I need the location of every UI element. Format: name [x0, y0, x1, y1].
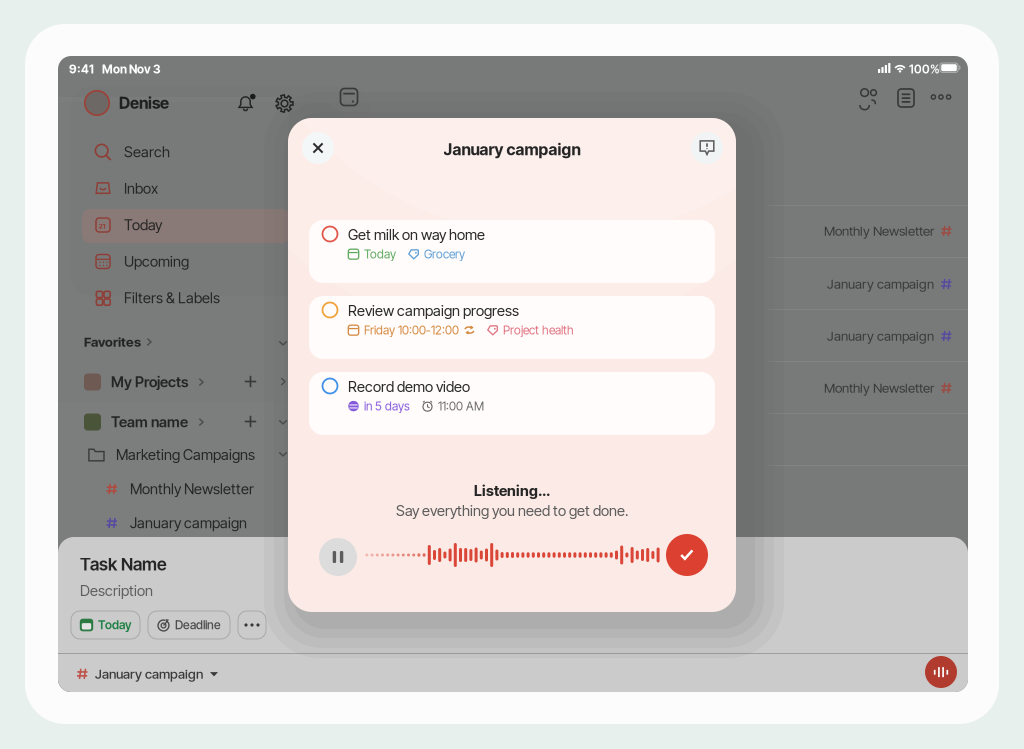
button[interactable]: Filters & Labels: [82, 281, 290, 315]
staticText: Search: [124, 143, 170, 161]
button[interactable]: Feedback: [691, 132, 723, 164]
button[interactable]: Record demo video: [309, 372, 715, 435]
staticText: 100%: [909, 62, 940, 76]
button[interactable]: [238, 611, 266, 639]
staticText: Team name: [111, 413, 188, 431]
button[interactable]: Denise: [84, 90, 169, 116]
staticText: Filters & Labels: [124, 289, 220, 307]
staticText: 11:00 AM: [438, 399, 484, 413]
staticText: Review campaign progress: [348, 302, 519, 319]
staticText: January campaign: [827, 276, 934, 292]
staticText: Get milk on way home: [348, 226, 485, 243]
staticText: 21: [99, 222, 106, 230]
staticText: Monthly Newsletter: [824, 380, 934, 396]
button[interactable]: Inbox: [82, 171, 290, 205]
staticText: Grocery: [424, 247, 465, 261]
staticText: Project health: [503, 323, 574, 337]
staticText: Today: [364, 247, 396, 261]
staticText: My Projects: [111, 373, 188, 391]
button[interactable]: Monthly Newsletter: [106, 475, 254, 503]
staticText: Deadline: [175, 618, 221, 632]
button[interactable]: Share: [859, 88, 880, 106]
staticText: Task Name: [80, 554, 167, 574]
staticText: Upcoming: [124, 253, 189, 270]
staticText: January campaign: [443, 140, 580, 159]
staticText: January campaign: [827, 328, 934, 344]
button[interactable]: Review campaign progress: [309, 296, 715, 359]
staticText: Mon Nov 3: [102, 62, 161, 76]
staticText: Monthly Newsletter: [824, 223, 934, 239]
staticText: Listening...: [474, 482, 550, 499]
button[interactable]: Favorites: [84, 334, 152, 350]
staticText: Description: [80, 582, 153, 599]
staticText: January campaign: [130, 514, 247, 532]
button[interactable]: Add project: [244, 415, 257, 428]
button[interactable]: Toggle sidebar: [339, 87, 359, 107]
button[interactable]: Search: [82, 135, 290, 169]
button[interactable]: More: [931, 94, 951, 100]
staticText: Monthly Newsletter: [130, 480, 254, 498]
staticText: Record demo video: [348, 378, 470, 395]
staticText: Denise: [119, 94, 169, 112]
button[interactable]: My Projects: [84, 367, 204, 397]
button[interactable]: Settings: [275, 94, 294, 113]
button[interactable]: Done: [666, 534, 708, 576]
staticText: January campaign: [95, 666, 203, 682]
staticText: Inbox: [124, 180, 158, 197]
button[interactable]: January campaign: [106, 509, 247, 537]
staticText: Say everything you need to get done.: [396, 502, 628, 519]
staticText: in 5 days: [364, 399, 410, 413]
staticText: Favorites: [84, 334, 141, 350]
button[interactable]: Notifications: [237, 93, 256, 113]
staticText: Friday 10:00-12:00: [364, 323, 459, 337]
staticText: Today: [124, 216, 162, 234]
button[interactable]: Team name: [84, 407, 204, 437]
button[interactable]: Add project: [244, 375, 257, 388]
button[interactable]: Deadline: [148, 611, 230, 639]
button[interactable]: Close: [302, 132, 334, 164]
button[interactable]: Upcoming: [82, 244, 290, 278]
button[interactable]: Pause: [319, 538, 357, 576]
button[interactable]: View: [896, 87, 914, 107]
button[interactable]: Today: [71, 611, 140, 639]
button[interactable]: Voice input: [925, 656, 957, 688]
staticText: Today: [98, 618, 131, 632]
staticText: 9:41: [69, 62, 94, 76]
button[interactable]: Marketing Campaigns: [88, 446, 255, 463]
staticText: Marketing Campaigns: [116, 446, 255, 463]
button[interactable]: 21: [82, 208, 290, 242]
button[interactable]: Get milk on way home: [309, 220, 715, 283]
